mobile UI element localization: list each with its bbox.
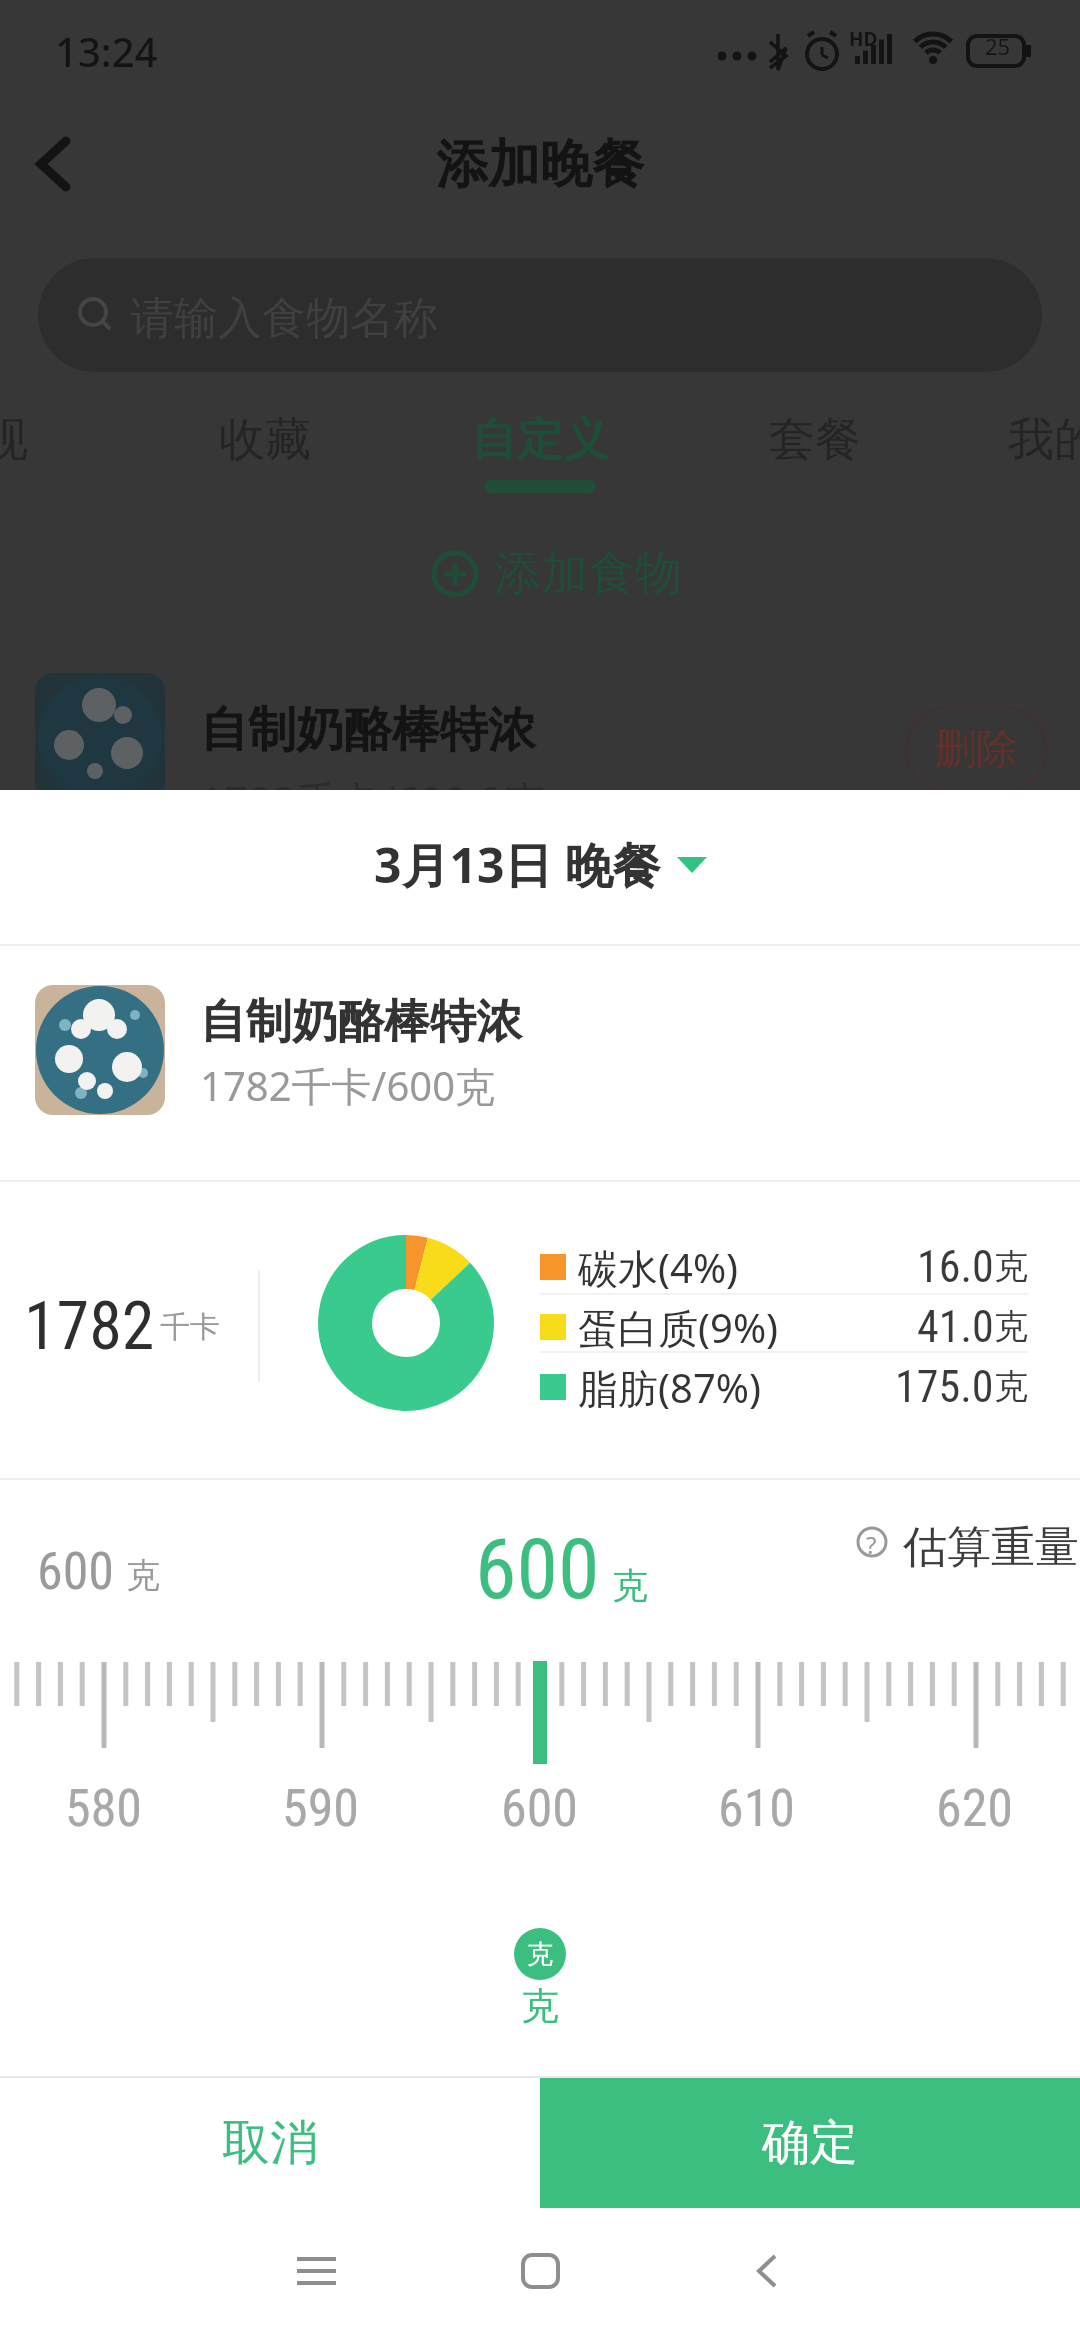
button[interactable]: 取消 (0, 2078, 540, 2208)
staticText: 1782千卡/600.0克 (200, 772, 546, 829)
staticText: 克 (994, 1305, 1028, 1348)
staticText: 现 (0, 411, 28, 469)
staticText: 自制奶酪棒特浓 (200, 700, 536, 760)
button[interactable] (727, 2231, 807, 2311)
button[interactable]: 套餐 (757, 404, 873, 476)
staticText: 620 (936, 1778, 1014, 1839)
staticText: 确定 (762, 2113, 858, 2173)
staticText: 克 (521, 1982, 559, 2030)
staticText: 克 (612, 1563, 648, 1608)
button[interactable]: 确定 (540, 2078, 1080, 2208)
staticText: 克 (527, 1938, 553, 1971)
staticText: 13:24 (55, 24, 158, 78)
button[interactable]: 现 (0, 404, 40, 476)
staticText: 25 (985, 31, 1011, 61)
staticText: 千卡 (160, 1308, 220, 1346)
button[interactable]: 自定义 (459, 404, 621, 476)
staticText: 取消 (222, 2113, 318, 2173)
staticText: 600 (37, 1541, 115, 1602)
button[interactable]: 克 (514, 1928, 566, 1980)
staticText: 600 (475, 1520, 600, 1618)
staticText: 克 (994, 1365, 1028, 1408)
staticText: 3月13日 晚餐 (374, 832, 661, 898)
staticText: 删除 (934, 723, 1018, 776)
button[interactable]: 收藏 (207, 404, 323, 476)
staticText: 41.0 (917, 1301, 994, 1353)
staticText: 请输入食物名称 (130, 291, 438, 346)
staticText: 580 (65, 1778, 143, 1839)
staticText: 收藏 (219, 411, 311, 469)
button[interactable]: 添加食物 (431, 544, 682, 603)
staticText: 1782千卡/600克 (200, 1058, 496, 1113)
staticText: 克 (994, 1245, 1028, 1288)
staticText: HD (849, 26, 878, 52)
staticText: 自定义 (471, 411, 609, 469)
button[interactable]: 3月13日 晚餐 (0, 832, 1080, 898)
button[interactable] (277, 2231, 357, 2311)
button[interactable] (36, 138, 72, 190)
staticText: 蛋白质(9%) (578, 1300, 779, 1355)
staticText: 克 (126, 1554, 160, 1597)
staticText: 估算重量 (903, 1520, 1079, 1575)
staticText: 175.0 (895, 1361, 994, 1413)
button[interactable] (500, 2231, 580, 2311)
button[interactable]: 我的 (996, 404, 1080, 476)
staticText: 我的 (1008, 411, 1080, 469)
button[interactable]: 请输入食物名称 (38, 258, 1042, 372)
button[interactable]: 删除 (905, 706, 1047, 792)
staticText: 16.0 (917, 1241, 994, 1293)
staticText: 自制奶酪棒特浓 (200, 993, 522, 1051)
button[interactable]: ? (855, 1525, 889, 1559)
staticText: 碳水(4%) (578, 1240, 739, 1295)
staticText: 590 (282, 1778, 360, 1839)
staticText: 添加晚餐 (436, 132, 644, 198)
staticText: 添加食物 (494, 544, 682, 603)
staticText: 1782 (24, 1288, 155, 1365)
staticText: ? (866, 1528, 877, 1561)
staticText: 套餐 (769, 411, 861, 469)
staticText: 脂肪(87%) (578, 1360, 761, 1415)
staticText: 600 (501, 1778, 579, 1839)
staticText: 610 (718, 1778, 796, 1839)
